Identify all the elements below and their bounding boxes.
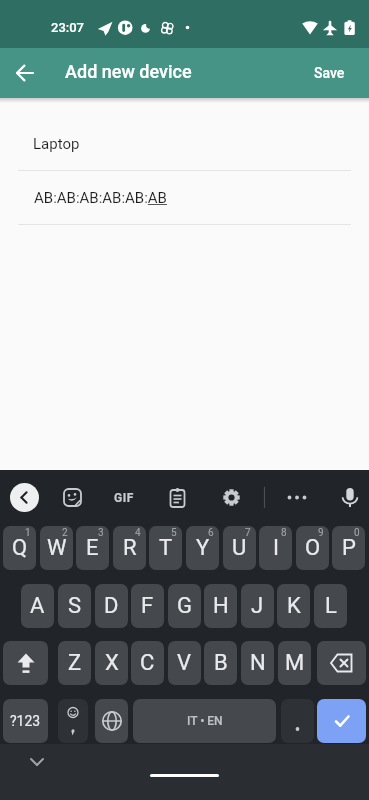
staticText: Z [68, 650, 82, 676]
button[interactable] [58, 699, 88, 743]
staticText: 6 [208, 527, 214, 539]
staticText: 5 [171, 527, 177, 539]
staticText: H [213, 593, 229, 619]
staticText: 3 [98, 527, 104, 539]
staticText: 8 [281, 527, 287, 539]
staticText: L [325, 593, 337, 619]
staticText: W [47, 535, 67, 561]
staticText: I [273, 535, 279, 561]
staticText: 9 [318, 527, 324, 539]
staticText: B [214, 650, 228, 676]
button[interactable] [9, 57, 41, 89]
staticText: D [104, 593, 119, 619]
staticText: U [232, 535, 247, 561]
staticText: Save [314, 65, 345, 81]
staticText: IT • EN [187, 714, 223, 728]
staticText: AB:AB:AB:AB:AB:AB [34, 189, 167, 207]
button[interactable]: K [277, 584, 310, 628]
button[interactable]: Y [186, 526, 219, 570]
staticText: O [305, 535, 321, 561]
staticText: 2 [62, 527, 68, 539]
button[interactable]: J [241, 584, 274, 628]
button[interactable]: I [259, 526, 292, 570]
button[interactable]: H [204, 584, 237, 628]
staticText: A [30, 593, 45, 619]
staticText: F [141, 593, 154, 619]
staticText: T [159, 535, 173, 561]
button[interactable] [281, 699, 314, 743]
button[interactable]: M [278, 641, 311, 685]
button[interactable]: R [113, 526, 146, 570]
button[interactable]: L [314, 584, 347, 628]
button[interactable]: T [149, 526, 182, 570]
staticText: P [342, 535, 356, 561]
staticText: 7 [245, 527, 251, 539]
staticText: R [123, 535, 137, 561]
button[interactable]: A [21, 584, 54, 628]
button[interactable] [3, 641, 48, 685]
staticText: 0 [354, 527, 360, 539]
staticText: C [140, 650, 155, 676]
button[interactable]: Q [3, 526, 36, 570]
staticText: X [105, 650, 119, 676]
staticText: 1 [25, 527, 31, 539]
staticText: 4 [135, 527, 141, 539]
button[interactable] [285, 487, 309, 508]
button[interactable]: F [131, 584, 164, 628]
button[interactable] [10, 483, 39, 512]
button[interactable]: GIF [108, 487, 140, 508]
staticText: GIF [114, 491, 134, 505]
button[interactable]: X [95, 641, 128, 685]
button[interactable] [221, 487, 242, 508]
button[interactable]: Z [58, 641, 91, 685]
staticText: Q [12, 535, 28, 561]
staticText: Add new device [65, 61, 192, 82]
button[interactable]: O [296, 526, 329, 570]
staticText: E [86, 535, 99, 561]
button[interactable]: C [131, 641, 164, 685]
button[interactable]: V [168, 641, 201, 685]
button[interactable]: ?123 [3, 699, 48, 743]
button[interactable] [339, 486, 361, 510]
button[interactable]: N [241, 641, 274, 685]
button[interactable] [167, 487, 188, 508]
staticText: G [177, 593, 192, 619]
staticText: 23:07 [51, 20, 85, 35]
staticText: V [177, 650, 192, 676]
button[interactable]: W [40, 526, 73, 570]
button[interactable]: S [58, 584, 91, 628]
staticText: Laptop [33, 135, 80, 153]
staticText: M [285, 650, 305, 676]
button[interactable]: B [204, 641, 237, 685]
button[interactable]: Save [301, 55, 357, 91]
button[interactable] [317, 699, 366, 743]
button[interactable] [95, 699, 128, 743]
button[interactable]: D [95, 584, 128, 628]
staticText: S [68, 593, 82, 619]
staticText: J [251, 593, 264, 619]
staticText: ?123 [10, 713, 41, 729]
button[interactable]: IT • EN [133, 699, 276, 743]
staticText: N [250, 650, 266, 676]
button[interactable] [317, 641, 366, 685]
button[interactable]: U [223, 526, 256, 570]
staticText: Y [196, 535, 210, 561]
button[interactable]: P [332, 526, 365, 570]
staticText: K [287, 593, 301, 619]
button[interactable]: E [76, 526, 109, 570]
button[interactable] [62, 487, 83, 508]
button[interactable]: G [168, 584, 201, 628]
